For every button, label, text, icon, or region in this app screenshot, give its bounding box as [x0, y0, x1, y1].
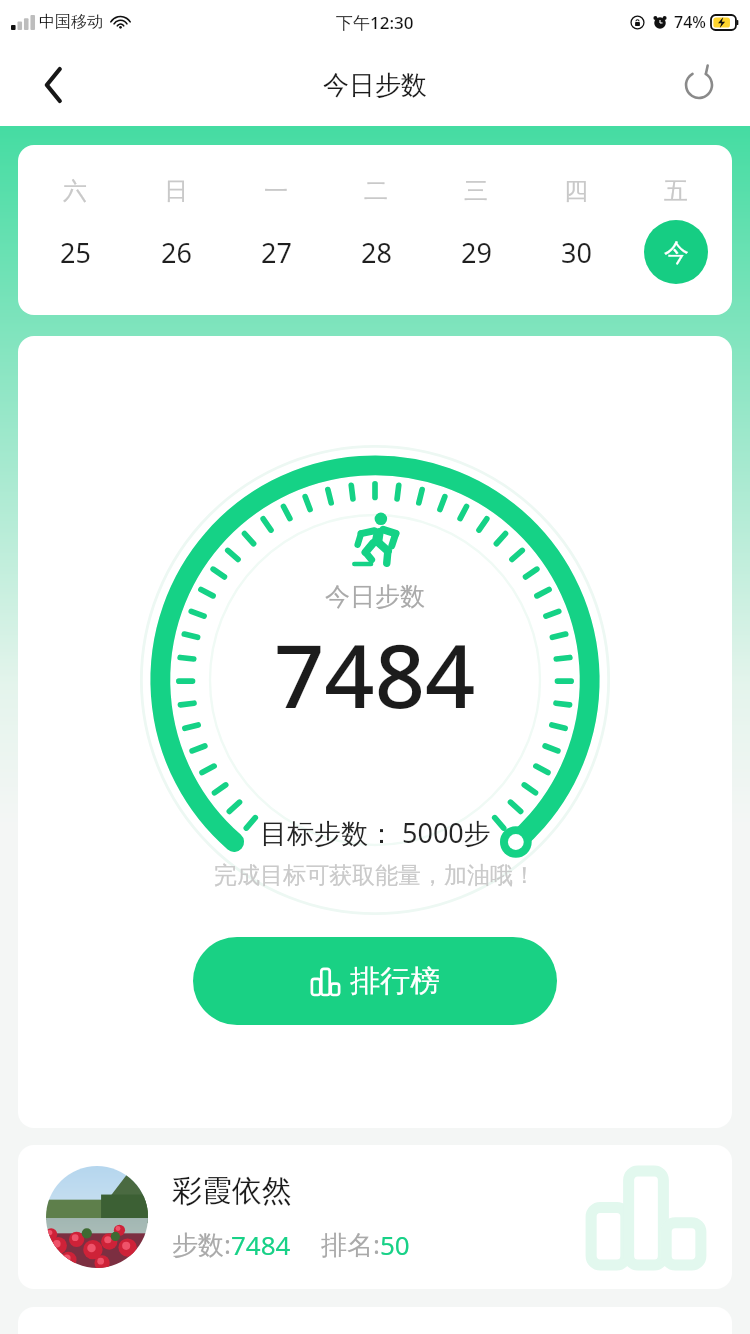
staticText: 中国移动 — [39, 12, 103, 32]
staticText: 50 — [380, 1227, 410, 1262]
button[interactable]: 五 — [626, 145, 726, 315]
button[interactable]: 一 — [226, 145, 326, 315]
staticText: 25 — [60, 234, 91, 271]
staticText: 目标步数： 5000步 — [260, 814, 491, 851]
button[interactable]: Back — [24, 56, 82, 114]
button[interactable]: 彩霞依然 — [18, 1145, 732, 1289]
staticText: 下午12:30 — [336, 11, 414, 34]
staticText: 步数: — [172, 1226, 231, 1262]
staticText: 今日步数 — [323, 69, 427, 102]
staticText: 26 — [161, 234, 192, 271]
button[interactable]: Refresh — [670, 56, 728, 114]
staticText: 完成目标可获取能量，加油哦！ — [214, 861, 536, 890]
staticText: 一 — [264, 176, 288, 206]
staticText: 27 — [261, 234, 292, 271]
button[interactable]: 四 — [526, 145, 626, 315]
staticText: 排名: — [321, 1226, 380, 1262]
button[interactable]: 三 — [426, 145, 526, 315]
button[interactable]: 排行榜 — [193, 937, 557, 1025]
staticText: 7484 — [231, 1227, 291, 1262]
staticText: 二 — [364, 176, 388, 206]
staticText: 30 — [561, 234, 592, 271]
staticText: 74% — [674, 11, 706, 33]
button[interactable]: 二 — [326, 145, 426, 315]
staticText: 六 — [63, 176, 87, 206]
staticText: 排行榜 — [350, 962, 440, 1000]
button[interactable]: 日 — [125, 145, 226, 315]
staticText: 29 — [461, 234, 492, 271]
staticText: 四 — [564, 176, 588, 206]
staticText: 彩霞依然 — [172, 1172, 292, 1210]
staticText: 7484 — [274, 614, 476, 734]
staticText: 三 — [464, 176, 488, 206]
staticText: 今 — [664, 237, 689, 268]
button[interactable]: 六 — [24, 145, 125, 315]
staticText: 28 — [361, 234, 392, 271]
staticText: 日 — [164, 176, 188, 206]
staticText: 今日步数 — [325, 581, 425, 612]
staticText: 五 — [664, 176, 688, 206]
